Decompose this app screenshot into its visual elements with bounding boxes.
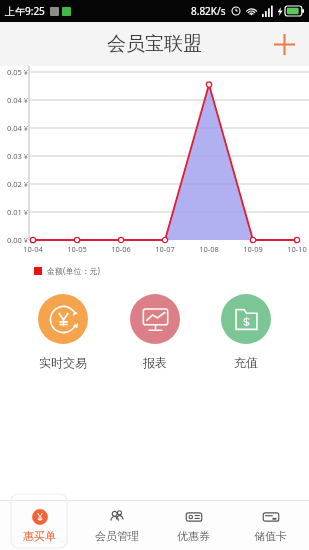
staticText: 会员管理 — [95, 529, 139, 543]
staticText: 实时交易 — [39, 355, 87, 370]
staticText: 会员宝联盟 — [107, 32, 202, 56]
staticText: 上午9:25 — [5, 4, 45, 18]
staticText: 10-04 — [16, 244, 50, 254]
button[interactable]: 充值 — [211, 292, 281, 372]
staticText: 0.04 ¥ — [0, 123, 28, 133]
staticText: 报表 — [143, 355, 167, 370]
staticText: 10-10 — [280, 244, 309, 254]
staticText: 惠买单 — [23, 529, 56, 543]
button[interactable]: 惠买单 — [0, 501, 78, 550]
button[interactable]: 优惠券 — [155, 501, 232, 550]
staticText: 10-05 — [60, 244, 94, 254]
staticText: 10-07 — [148, 244, 182, 254]
staticText: 0.02 ¥ — [0, 179, 28, 189]
staticText: 0.05 ¥ — [0, 67, 28, 77]
staticText: 充值 — [234, 355, 258, 370]
button[interactable]: 实时交易 — [28, 292, 98, 372]
button[interactable]: 储值卡 — [232, 501, 309, 550]
staticText: 0.03 ¥ — [0, 151, 28, 161]
button[interactable]: 报表 — [120, 292, 190, 372]
staticText: 10-08 — [192, 244, 226, 254]
button[interactable]: 会员管理 — [78, 501, 155, 550]
staticText: 储值卡 — [254, 529, 287, 543]
staticText: 8.82K/s — [191, 4, 226, 18]
staticText: 10-09 — [236, 244, 270, 254]
staticText: 0.04 ¥ — [0, 95, 28, 105]
staticText: 优惠券 — [177, 529, 210, 543]
button[interactable]: Add — [263, 23, 305, 65]
staticText: 金额(单位：元) — [47, 265, 100, 276]
staticText: 10-06 — [104, 244, 138, 254]
staticText: 0.01 ¥ — [0, 207, 28, 217]
staticText: 0.00 ¥ — [0, 235, 28, 245]
